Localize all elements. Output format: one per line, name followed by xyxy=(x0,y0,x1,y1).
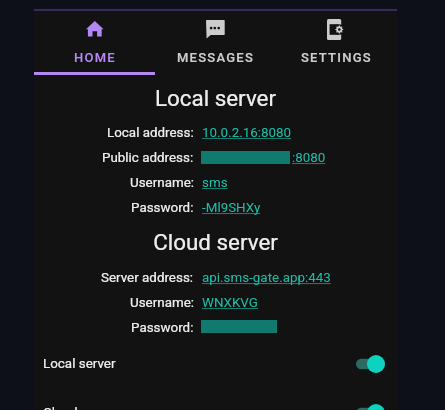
other: Messages xyxy=(206,20,225,39)
staticText: Public address: xyxy=(102,150,194,166)
staticText: api.sms-gate.app:443 xyxy=(202,270,331,286)
staticText: 10.0.2.16:8080 xyxy=(202,125,292,141)
staticText: Password: xyxy=(131,320,194,336)
staticText: Local address: xyxy=(107,125,194,141)
staticText: Cloud server xyxy=(43,405,118,410)
staticText: :8080 xyxy=(292,150,326,166)
staticText: Local server xyxy=(34,85,397,111)
button[interactable]: Local server xyxy=(34,345,397,390)
button[interactable]: Home xyxy=(34,10,155,75)
staticText: -Ml9SHXy xyxy=(202,200,261,216)
staticText: WNXKVG xyxy=(202,295,258,311)
staticText: Username: xyxy=(130,175,194,191)
staticText: HOME xyxy=(74,50,116,65)
other: Settings xyxy=(327,19,344,40)
button[interactable]: Cloud server xyxy=(34,394,397,410)
staticText: Password: xyxy=(131,200,194,216)
other: Home xyxy=(86,21,104,37)
button[interactable]: Settings xyxy=(276,10,397,75)
staticText: MESSAGES xyxy=(177,50,255,65)
staticText: Username: xyxy=(130,295,194,311)
staticText: Cloud server xyxy=(34,229,397,255)
button[interactable]: Messages xyxy=(155,10,276,75)
staticText: sms xyxy=(202,175,228,191)
staticText: Server address: xyxy=(101,270,194,286)
staticText: Local server xyxy=(43,356,116,372)
staticText: SETTINGS xyxy=(301,50,372,65)
